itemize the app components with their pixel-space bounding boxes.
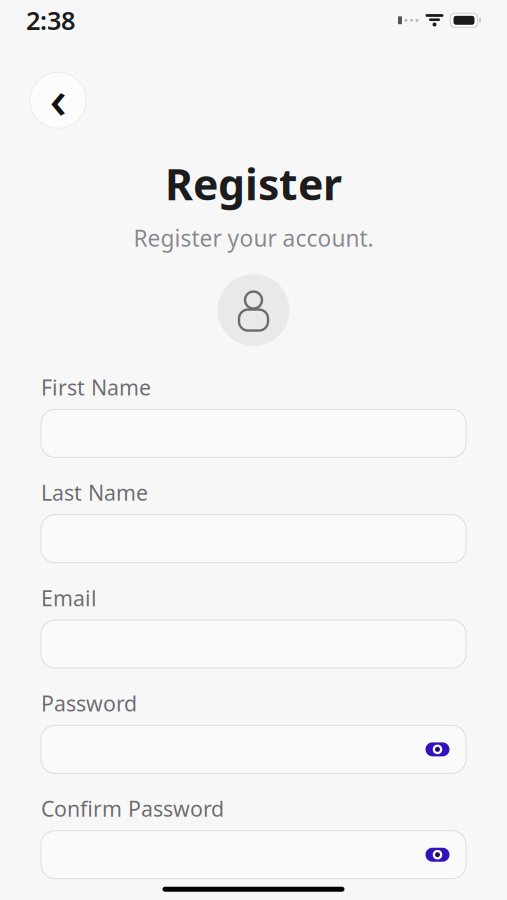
- staticText: Password: [41, 689, 137, 717]
- staticText: Confirm Password: [41, 794, 224, 823]
- staticText: Email: [41, 584, 97, 612]
- button[interactable]: [41, 620, 466, 668]
- staticText: Register your account.: [133, 223, 373, 253]
- staticText: ‹: [49, 62, 66, 133]
- button[interactable]: [41, 515, 466, 563]
- staticText: 2:38: [26, 3, 75, 37]
- button[interactable]: Back: [30, 72, 86, 128]
- staticText: Last Name: [41, 478, 148, 507]
- button[interactable]: [41, 831, 466, 879]
- button[interactable]: [41, 409, 466, 457]
- staticText: First Name: [41, 373, 151, 401]
- button[interactable]: [41, 725, 466, 773]
- staticText: Register: [165, 155, 342, 212]
